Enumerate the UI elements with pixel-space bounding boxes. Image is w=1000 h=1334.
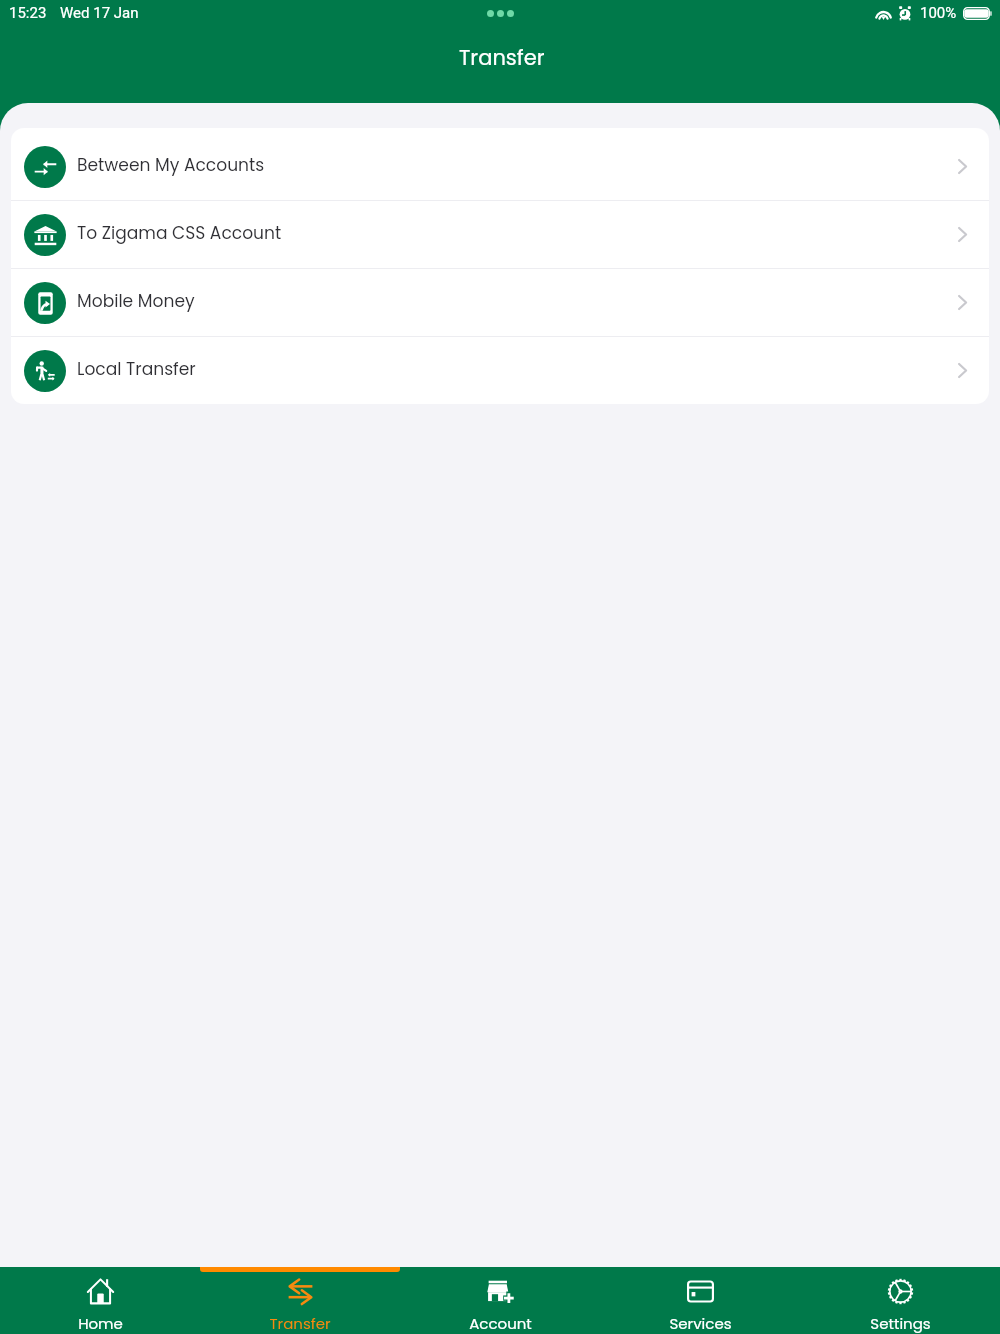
button[interactable]: Mobile Money: [11, 269, 989, 336]
staticText: Mobile Money: [77, 289, 195, 313]
staticText: Home: [78, 1313, 123, 1334]
staticText: Local Transfer: [77, 357, 196, 381]
staticText: Settings: [870, 1313, 931, 1334]
button[interactable]: Local Transfer: [11, 337, 989, 404]
button[interactable]: Between My Accounts: [11, 133, 989, 200]
staticText: Account: [469, 1313, 532, 1334]
staticText: 15:23: [9, 4, 47, 22]
staticText: Wed 17 Jan: [60, 4, 139, 22]
button[interactable]: To Zigama CSS Account: [11, 201, 989, 268]
staticText: Services: [669, 1313, 732, 1334]
button[interactable]: Account: [400, 1267, 600, 1333]
button[interactable]: Home: [0, 1267, 200, 1333]
staticText: Transfer: [459, 43, 545, 72]
button[interactable]: Transfer: [200, 1267, 400, 1333]
staticText: 100%: [920, 4, 957, 22]
staticText: To Zigama CSS Account: [77, 221, 282, 245]
staticText: Transfer: [269, 1313, 331, 1334]
button[interactable]: Settings: [800, 1267, 1000, 1333]
staticText: Between My Accounts: [77, 153, 265, 177]
button[interactable]: Services: [600, 1267, 800, 1333]
